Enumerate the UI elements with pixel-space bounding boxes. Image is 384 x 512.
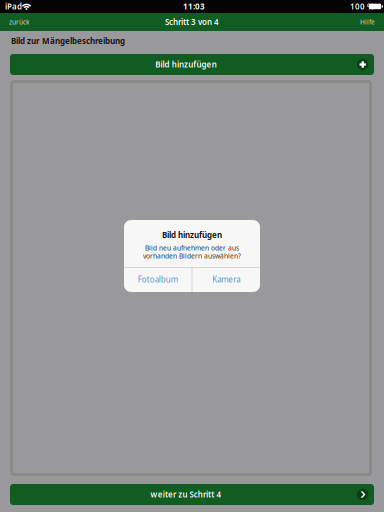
staticText: Fotoalbum	[138, 274, 178, 285]
staticText: zurück	[9, 18, 30, 26]
staticText: 11:03	[183, 1, 205, 12]
button[interactable]: zurück	[9, 13, 43, 31]
staticText: weiter zu Schritt 4	[151, 489, 221, 500]
staticText: iPad	[5, 1, 22, 12]
staticText: Schritt 3 von 4	[165, 17, 219, 27]
staticText: Bild hinzufügen	[155, 59, 217, 70]
button[interactable]: weiter zu Schritt 4	[10, 484, 374, 505]
staticText: Bild neu aufnehmen oder aus	[145, 244, 239, 252]
staticText: Bild zur Mängelbeschreibung	[11, 36, 125, 46]
button[interactable]: Hilfe	[349, 13, 375, 31]
staticText: Kamera	[212, 274, 240, 285]
button[interactable]: Bild hinzufügen	[10, 54, 374, 75]
staticText: vorhanden Bildern auswählen?	[143, 252, 241, 260]
button[interactable]: Fotoalbum	[124, 267, 192, 292]
staticText: Bild hinzufügen	[162, 230, 222, 240]
staticText: Hilfe	[360, 18, 375, 26]
button[interactable]: Kamera	[192, 267, 260, 292]
staticText: 100 %	[350, 1, 374, 12]
